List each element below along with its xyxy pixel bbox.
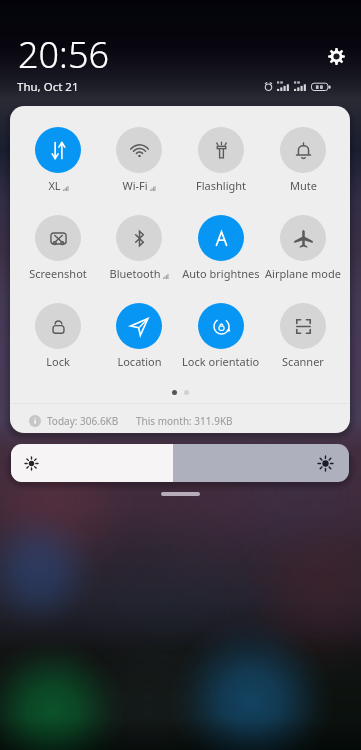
staticText: Lock [46,354,70,369]
staticText: Today: 306.6KB [47,414,119,428]
staticText: Wi-Fi [122,178,148,193]
button[interactable]: Wi-Fi [100,124,178,193]
button[interactable]: Lock [19,300,97,369]
button[interactable]: Mute [264,124,342,193]
staticText: 20:56 [18,30,110,79]
staticText: Thu, Oct 21 [17,79,79,95]
staticText: Auto brightness [182,266,260,281]
button[interactable]: Flashlight [182,124,260,193]
staticText: Mute [290,178,317,193]
button[interactable]: Settings [326,46,346,66]
staticText: Location [117,354,162,369]
button[interactable]: Scanner [264,300,342,369]
staticText: Flashlight [196,178,246,193]
button[interactable]: Lock orientation [182,300,260,369]
button[interactable]: Auto brightness [182,212,260,281]
button[interactable]: Location [100,300,178,369]
button[interactable]: Bluetooth [100,212,178,281]
button[interactable]: Screenshot [19,212,97,281]
staticText: Airplane mode [265,266,341,281]
button[interactable]: XL [19,124,97,193]
button[interactable]: Airplane mode [264,212,342,281]
staticText: This month: 311.9KB [136,414,233,428]
staticText: Bluetooth [109,266,161,281]
staticText: Scanner [282,354,324,369]
staticText: XL [48,178,61,193]
staticText: Screenshot [29,266,87,281]
staticText: Lock orientation [182,354,260,369]
button[interactable] [11,444,349,482]
